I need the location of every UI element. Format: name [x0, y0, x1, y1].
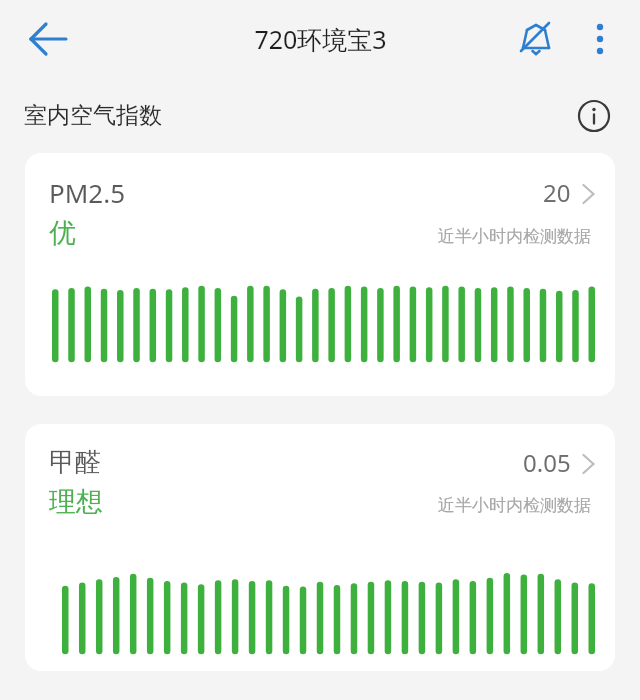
staticText: 20 [543, 176, 571, 209]
staticText: 0.05 [523, 446, 571, 479]
staticText: 室内空气指数 [24, 101, 162, 130]
staticText: 720环境宝3 [254, 22, 387, 56]
button[interactable]: More options [574, 13, 626, 65]
staticText: 甲醛 [49, 446, 101, 479]
button[interactable]: 甲醛 [25, 424, 615, 671]
staticText: 近半小时内检测数据 [438, 495, 591, 516]
button[interactable]: PM2.5 [25, 153, 615, 396]
staticText: PM2.5 [49, 175, 126, 210]
button[interactable]: Back [18, 9, 78, 69]
button[interactable]: Information [574, 96, 614, 136]
staticText: 优 [49, 216, 76, 250]
staticText: 近半小时内检测数据 [438, 226, 591, 247]
staticText: 理想 [49, 485, 103, 519]
button[interactable]: Notifications off [510, 13, 562, 65]
